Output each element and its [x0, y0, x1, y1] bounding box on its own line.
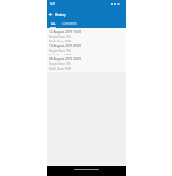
button[interactable]: ALL	[47, 20, 59, 28]
button[interactable]: 10 August 2019 09:00	[47, 42, 126, 56]
staticText: 10 August 2019 09:00	[49, 44, 81, 48]
button[interactable]: CONSENTS	[59, 20, 79, 28]
staticText: CONSENTS	[62, 22, 77, 26]
staticText: Single Dose 700	[49, 62, 71, 66]
staticText: Multi Dose 3800	[49, 40, 72, 42]
staticText: 08 August 2019 20:00	[49, 57, 81, 61]
staticText: Multi Dose 3800	[49, 54, 72, 56]
staticText: ALL	[51, 22, 56, 26]
button[interactable]: 12 August 2019 15:00	[47, 28, 126, 42]
staticText: History	[55, 13, 66, 17]
staticText: Single Dose 700	[49, 49, 71, 53]
staticText: 12 August 2019 15:00	[49, 30, 81, 34]
staticText: Multi Dose 3800	[49, 67, 72, 71]
staticText: 9:41	[50, 2, 56, 6]
button[interactable]: Back	[47, 8, 54, 20]
button[interactable]: 08 August 2019 20:00	[47, 55, 126, 72]
staticText: Single Dose 700	[49, 35, 71, 39]
